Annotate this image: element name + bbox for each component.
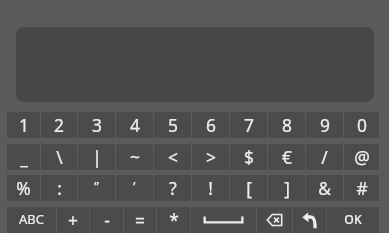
button[interactable]: ? [154,175,191,201]
staticText: 5 [168,113,178,137]
staticText: 9 [320,113,330,137]
button[interactable]: * [157,207,190,233]
button[interactable]: : [41,175,77,201]
button[interactable]: 2 [41,112,77,138]
staticText: 1 [19,113,29,137]
staticText: | [92,145,102,169]
button[interactable]: 8 [268,112,305,138]
button[interactable]: Space [191,207,256,233]
staticText: & [318,176,331,200]
button[interactable]: 0 [344,112,379,138]
button[interactable]: < [154,144,191,170]
staticText: 7 [244,113,254,137]
staticText: € [282,145,292,169]
button[interactable]: ’ [116,175,153,201]
staticText: ~ [130,145,140,169]
staticText: : [57,176,62,200]
staticText: _ [20,145,28,169]
staticText: > [206,145,216,169]
button[interactable]: [ [230,175,267,201]
staticText: / [321,145,328,169]
staticText: [ [246,176,252,200]
staticText: + [68,208,78,232]
staticText: OK [344,211,362,228]
button[interactable]: ABC [7,207,56,233]
staticText: 3 [92,113,102,137]
button[interactable]: 3 [78,112,115,138]
button[interactable]: ] [268,175,305,201]
staticText: ] [284,176,290,200]
staticText: - [104,208,110,232]
button[interactable]: Backspace [257,207,292,233]
staticText: ’ [133,177,136,195]
button[interactable]: \ [41,144,77,170]
staticText: 8 [282,113,292,137]
button[interactable]: 6 [192,112,229,138]
button[interactable]: = [124,207,156,233]
button[interactable]: € [268,144,305,170]
button[interactable]: _ [7,144,40,170]
button[interactable]: # [344,175,379,201]
button[interactable]: 7 [230,112,267,138]
button[interactable]: / [306,144,343,170]
button[interactable]: % [7,175,40,201]
button[interactable]: 9 [306,112,343,138]
staticText: ? [169,176,177,200]
staticText: 6 [206,113,216,137]
staticText: @ [354,145,370,169]
button[interactable]: @ [344,144,379,170]
button[interactable]: 5 [154,112,191,138]
staticText: # [356,176,368,200]
staticText: $ [244,145,254,169]
staticText: 2 [54,113,64,137]
staticText: ! [208,176,213,200]
button[interactable]: 1 [7,112,40,138]
button[interactable]: 4 [116,112,153,138]
button[interactable]: Return [293,207,326,233]
staticText: ” [94,177,99,195]
staticText: * [169,208,179,232]
button[interactable]: ~ [116,144,153,170]
staticText: = [135,208,145,232]
button[interactable]: & [306,175,343,201]
staticText: 4 [130,113,140,137]
staticText: < [168,145,178,169]
staticText: ABC [19,210,44,228]
button[interactable]: + [57,207,89,233]
button[interactable]: ! [192,175,229,201]
button[interactable]: > [192,144,229,170]
staticText: \ [56,145,63,169]
button[interactable]: | [78,144,115,170]
staticText: 0 [357,113,367,137]
staticText: % [16,176,31,200]
button[interactable]: $ [230,144,267,170]
button[interactable]: - [90,207,123,233]
button[interactable]: OK [327,207,379,233]
button[interactable]: ” [78,175,115,201]
